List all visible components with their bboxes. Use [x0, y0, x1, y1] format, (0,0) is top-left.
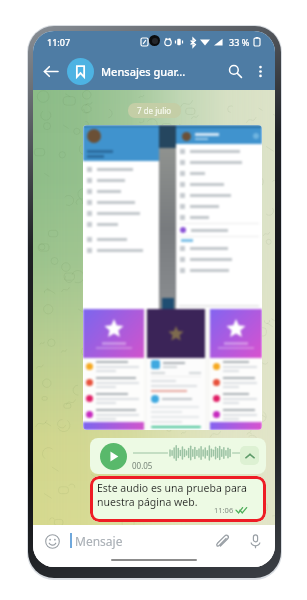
button[interactable]: Play — [100, 443, 127, 470]
staticText: 33 % — [229, 36, 250, 48]
button[interactable]: Search — [222, 58, 248, 84]
staticText: 00.05 — [132, 460, 153, 471]
button[interactable]: Voice message — [245, 531, 265, 551]
staticText: 11:06 — [214, 505, 234, 515]
button[interactable]: Expand — [240, 446, 259, 465]
button[interactable]: More options — [249, 60, 271, 82]
staticText: Mensajes guar... — [101, 64, 222, 79]
button[interactable]: Back — [36, 57, 64, 85]
button[interactable]: Attach — [212, 531, 232, 551]
staticText: Mensaje — [75, 533, 212, 549]
staticText: Este audio es una prueba para nuestra pá… — [97, 481, 247, 509]
button[interactable]: Emoji — [42, 531, 62, 551]
staticText: 7 de julio — [137, 105, 172, 116]
staticText: 11:07 — [47, 36, 71, 48]
